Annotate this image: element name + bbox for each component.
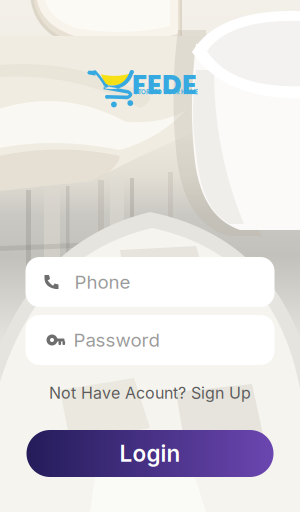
button[interactable]: Password bbox=[25, 315, 274, 365]
staticText: FEDE bbox=[132, 66, 197, 103]
button[interactable]: Phone bbox=[25, 257, 274, 307]
staticText: Login bbox=[119, 440, 180, 467]
staticText: Phone bbox=[74, 271, 130, 293]
staticText: Password bbox=[73, 329, 159, 351]
button[interactable]: Not Have Acount? Sign Up bbox=[40, 382, 260, 404]
staticText: STORE TO YOUR HOME bbox=[134, 88, 198, 96]
button[interactable]: Login bbox=[26, 430, 273, 477]
staticText: Not Have Acount? Sign Up bbox=[49, 383, 251, 403]
